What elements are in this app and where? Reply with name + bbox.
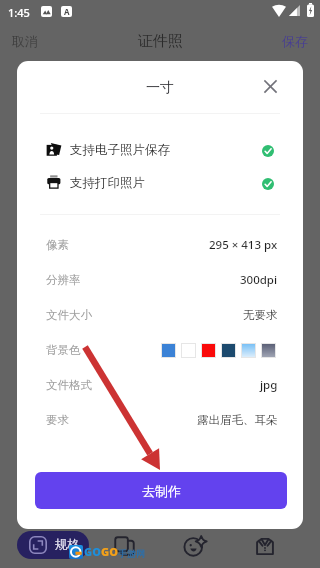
staticText: 支持电子照片保存 (70, 142, 170, 158)
button[interactable]: Background colour option 3 (201, 343, 216, 358)
button[interactable]: Close (258, 74, 282, 98)
button[interactable]: Background colour option 5 (241, 343, 256, 358)
staticText: A (64, 6, 70, 17)
button[interactable]: 去制作 (35, 472, 287, 509)
button[interactable]: 取消 (0, 27, 50, 55)
button[interactable]: Beautify (178, 530, 210, 562)
button[interactable]: Clothes (249, 530, 281, 562)
button[interactable]: 保存 (270, 27, 320, 55)
staticText: 文件大小 (46, 308, 92, 322)
staticText: 300dpi (240, 272, 278, 288)
staticText: 像素 (46, 238, 69, 252)
staticText: 露出眉毛、耳朵 (197, 413, 278, 427)
button[interactable]: 规格 (17, 531, 89, 559)
staticText: 要求 (46, 413, 69, 427)
staticText: 保存 (282, 33, 308, 49)
button[interactable]: Background colour option 2 (181, 343, 196, 358)
staticText: GO (84, 544, 101, 559)
staticText: 文件格式 (46, 378, 92, 392)
staticText: jpg (260, 377, 278, 393)
button[interactable]: Background colour option 4 (221, 343, 236, 358)
staticText: 证件照 (138, 32, 183, 51)
staticText: 背景色 (46, 343, 81, 357)
staticText: 去制作 (142, 483, 181, 499)
staticText: 1:45 (8, 5, 30, 20)
staticText: 无要求 (243, 308, 278, 322)
button[interactable]: Background colour option 1 (161, 343, 176, 358)
button[interactable]: Duplicate (108, 530, 140, 562)
button[interactable]: Background colour option 6 (261, 343, 276, 358)
staticText: 手游网 (118, 548, 145, 559)
staticText: 取消 (12, 33, 38, 49)
staticText: 295 × 413 px (209, 237, 278, 253)
staticText: 支持打印照片 (70, 175, 145, 191)
staticText: GO (101, 544, 118, 559)
staticText: 规格 (55, 537, 80, 553)
staticText: 分辨率 (46, 273, 81, 287)
staticText: 一寸 (146, 79, 174, 97)
